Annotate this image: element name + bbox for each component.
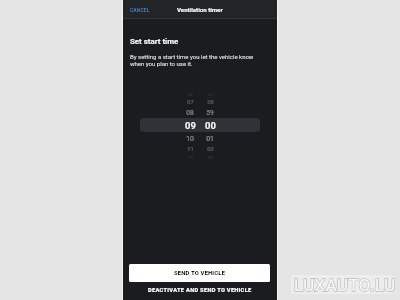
button[interactable]: 01	[199, 133, 221, 144]
staticText: 03	[208, 155, 213, 160]
button[interactable]: 02	[199, 144, 221, 155]
button[interactable]: 00	[199, 120, 221, 131]
button[interactable]: 58	[199, 97, 221, 108]
staticText: 08	[186, 109, 194, 117]
staticText: Ventilation timer	[177, 6, 223, 13]
staticText: 59	[206, 109, 214, 117]
staticText: 07	[187, 99, 194, 106]
staticText: LUXAUTO.LU	[294, 275, 396, 295]
button[interactable]: CANCEL	[126, 3, 154, 17]
staticText: 58	[207, 99, 214, 106]
staticText: 09	[185, 120, 196, 131]
staticText: 57	[208, 92, 213, 97]
staticText: CANCEL	[130, 7, 150, 13]
staticText: 02	[207, 146, 214, 153]
staticText: 06	[188, 92, 193, 97]
staticText: DEACTIVATE AND SEND TO VEHICLE	[148, 287, 252, 294]
button[interactable]: 08	[179, 107, 201, 118]
button[interactable]: 10	[179, 133, 201, 144]
staticText: 01	[206, 135, 214, 143]
staticText: 00	[205, 120, 216, 131]
button[interactable]: 09	[179, 120, 201, 131]
staticText: SEND TO VEHICLE	[174, 270, 226, 277]
staticText: 12	[188, 155, 193, 160]
staticText: 11	[187, 146, 194, 153]
button[interactable]: SEND TO VEHICLE	[129, 264, 270, 282]
staticText: Set start time	[130, 37, 179, 46]
button[interactable]: DEACTIVATE AND SEND TO VEHICLE	[123, 284, 277, 300]
staticText: LUXAUTO.LU	[294, 275, 396, 295]
button[interactable]: 59	[199, 107, 221, 118]
button[interactable]: 11	[179, 144, 201, 155]
staticText: 10	[186, 135, 194, 143]
button[interactable]: 07	[179, 97, 201, 108]
staticText: By setting a start time you let the vehi…	[130, 53, 262, 68]
